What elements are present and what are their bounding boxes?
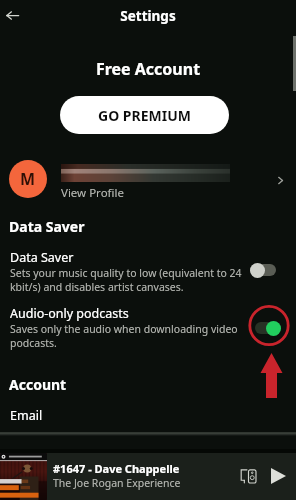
button[interactable] (0, 302, 296, 348)
staticText: Free Account (0, 58, 296, 80)
button[interactable]: Back (0, 3, 25, 28)
button[interactable] (0, 246, 296, 292)
staticText: Data Saver (10, 249, 74, 266)
button[interactable]: Play (266, 464, 290, 488)
staticText: Audio-only podcasts (10, 305, 129, 322)
staticText: Data Saver (9, 217, 85, 236)
button[interactable]: Connect to a device (236, 464, 260, 488)
staticText: Settings (0, 7, 296, 25)
button[interactable] (0, 453, 296, 500)
button[interactable]: GO PREMIUM (60, 96, 229, 134)
staticText: View Profile (61, 185, 124, 201)
button[interactable]: View Profile (270, 170, 290, 190)
staticText: GO PREMIUM (98, 106, 192, 125)
button[interactable]: Off (250, 262, 276, 278)
staticText: Email (10, 407, 43, 424)
staticText: Sets your music quality to low (equivale… (10, 266, 258, 294)
button[interactable]: On (255, 320, 281, 336)
staticText: The Joe Rogan Experience (53, 476, 181, 490)
staticText: #1647 - Dave Chappelle (53, 461, 180, 476)
button[interactable] (0, 404, 296, 432)
staticText: Account (9, 375, 67, 394)
staticText: M (20, 168, 36, 190)
staticText: Saves only the audio when downloading vi… (10, 322, 253, 350)
button[interactable]: M (0, 158, 296, 200)
